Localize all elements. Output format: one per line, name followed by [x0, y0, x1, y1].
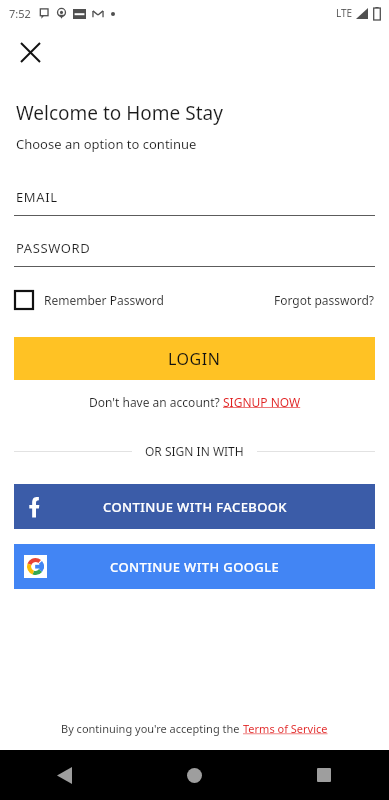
- staticText: By continuing you're accepting the: [61, 721, 243, 736]
- button[interactable]: PASSWORD: [14, 239, 375, 267]
- staticText: Welcome to Home Stay: [16, 100, 223, 126]
- button[interactable]: Home: [129, 750, 259, 800]
- staticText: Terms of Service: [243, 721, 328, 736]
- staticText: PASSWORD: [16, 239, 91, 257]
- button[interactable]: CONTINUE WITH GOOGLE: [14, 544, 375, 589]
- staticText: Choose an option to continue: [16, 135, 197, 153]
- staticText: CONTINUE WITH GOOGLE: [110, 558, 280, 576]
- button[interactable]: Terms of Service: [243, 721, 328, 736]
- staticText: EMAIL: [16, 188, 58, 206]
- button[interactable]: Remember Password: [14, 290, 164, 310]
- button[interactable]: Forgot password?: [274, 292, 375, 308]
- staticText: Don't have an account?: [89, 394, 223, 410]
- button[interactable]: EMAIL: [14, 188, 375, 216]
- staticText: OR SIGN IN WITH: [145, 443, 244, 459]
- staticText: LOGIN: [168, 348, 221, 370]
- button[interactable]: Close: [10, 32, 50, 72]
- button[interactable]: SIGNUP NOW: [223, 394, 301, 410]
- staticText: Forgot password?: [274, 292, 375, 308]
- button[interactable]: CONTINUE WITH FACEBOOK: [14, 484, 375, 529]
- button[interactable]: Back: [0, 750, 129, 800]
- staticText: CONTINUE WITH FACEBOOK: [103, 498, 287, 516]
- staticText: SIGNUP NOW: [223, 394, 301, 410]
- staticText: LTE: [336, 6, 353, 20]
- staticText: Remember Password: [44, 292, 164, 308]
- staticText: 7:52: [9, 6, 31, 21]
- button[interactable]: Recents: [259, 750, 389, 800]
- button[interactable]: LOGIN: [14, 337, 375, 380]
